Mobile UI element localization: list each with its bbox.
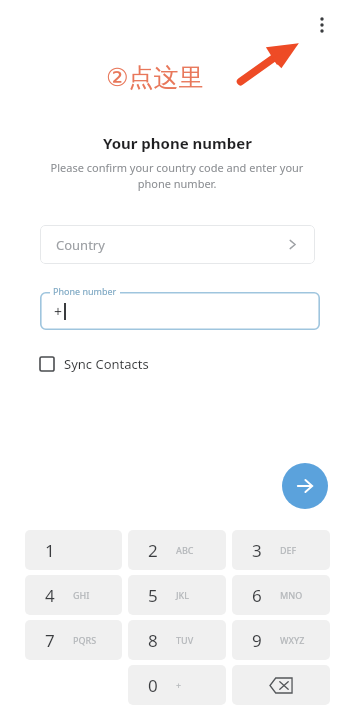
button[interactable]: 6 xyxy=(232,575,330,615)
button[interactable]: Sync Contacts xyxy=(36,350,153,378)
staticText: TUV xyxy=(176,634,194,646)
button[interactable]: Next xyxy=(282,463,328,509)
staticText: PQRS xyxy=(73,634,97,646)
staticText: Your phone number xyxy=(103,133,252,153)
staticText: GHI xyxy=(73,589,90,601)
button[interactable]: + xyxy=(40,292,320,330)
staticText: ②点这里 xyxy=(106,62,204,93)
staticText: 4 xyxy=(45,584,55,607)
staticText: 5 xyxy=(148,584,158,607)
button[interactable]: 5 xyxy=(128,575,226,615)
staticText: 2 xyxy=(148,539,158,562)
staticText: 3 xyxy=(252,539,262,562)
button[interactable]: Country xyxy=(40,225,315,264)
staticText: Sync Contacts xyxy=(64,355,149,373)
button[interactable]: 0 xyxy=(128,665,226,705)
staticText: 8 xyxy=(148,629,158,652)
staticText: 6 xyxy=(252,584,262,607)
button[interactable]: 9 xyxy=(232,620,330,660)
button[interactable]: 3 xyxy=(232,530,330,570)
staticText: DEF xyxy=(280,544,297,556)
staticText: 7 xyxy=(45,629,55,652)
staticText: + xyxy=(54,302,63,321)
staticText: Phone number xyxy=(53,285,117,297)
button[interactable]: Backspace xyxy=(232,665,330,705)
button[interactable]: 2 xyxy=(128,530,226,570)
staticText: + xyxy=(176,679,182,691)
staticText: Country xyxy=(56,236,105,254)
staticText: WXYZ xyxy=(280,634,305,646)
staticText: 1 xyxy=(45,539,55,562)
staticText: ABC xyxy=(176,544,194,556)
staticText: JKL xyxy=(176,589,190,601)
staticText: 9 xyxy=(252,629,262,652)
button[interactable]: 4 xyxy=(25,575,122,615)
button[interactable]: 1 xyxy=(25,530,122,570)
button[interactable]: 8 xyxy=(128,620,226,660)
button[interactable]: 7 xyxy=(25,620,122,660)
button[interactable]: More options xyxy=(305,5,339,45)
staticText: Please confirm your country code and ent… xyxy=(40,160,314,192)
staticText: MNO xyxy=(280,589,303,601)
staticText: 0 xyxy=(148,674,158,697)
